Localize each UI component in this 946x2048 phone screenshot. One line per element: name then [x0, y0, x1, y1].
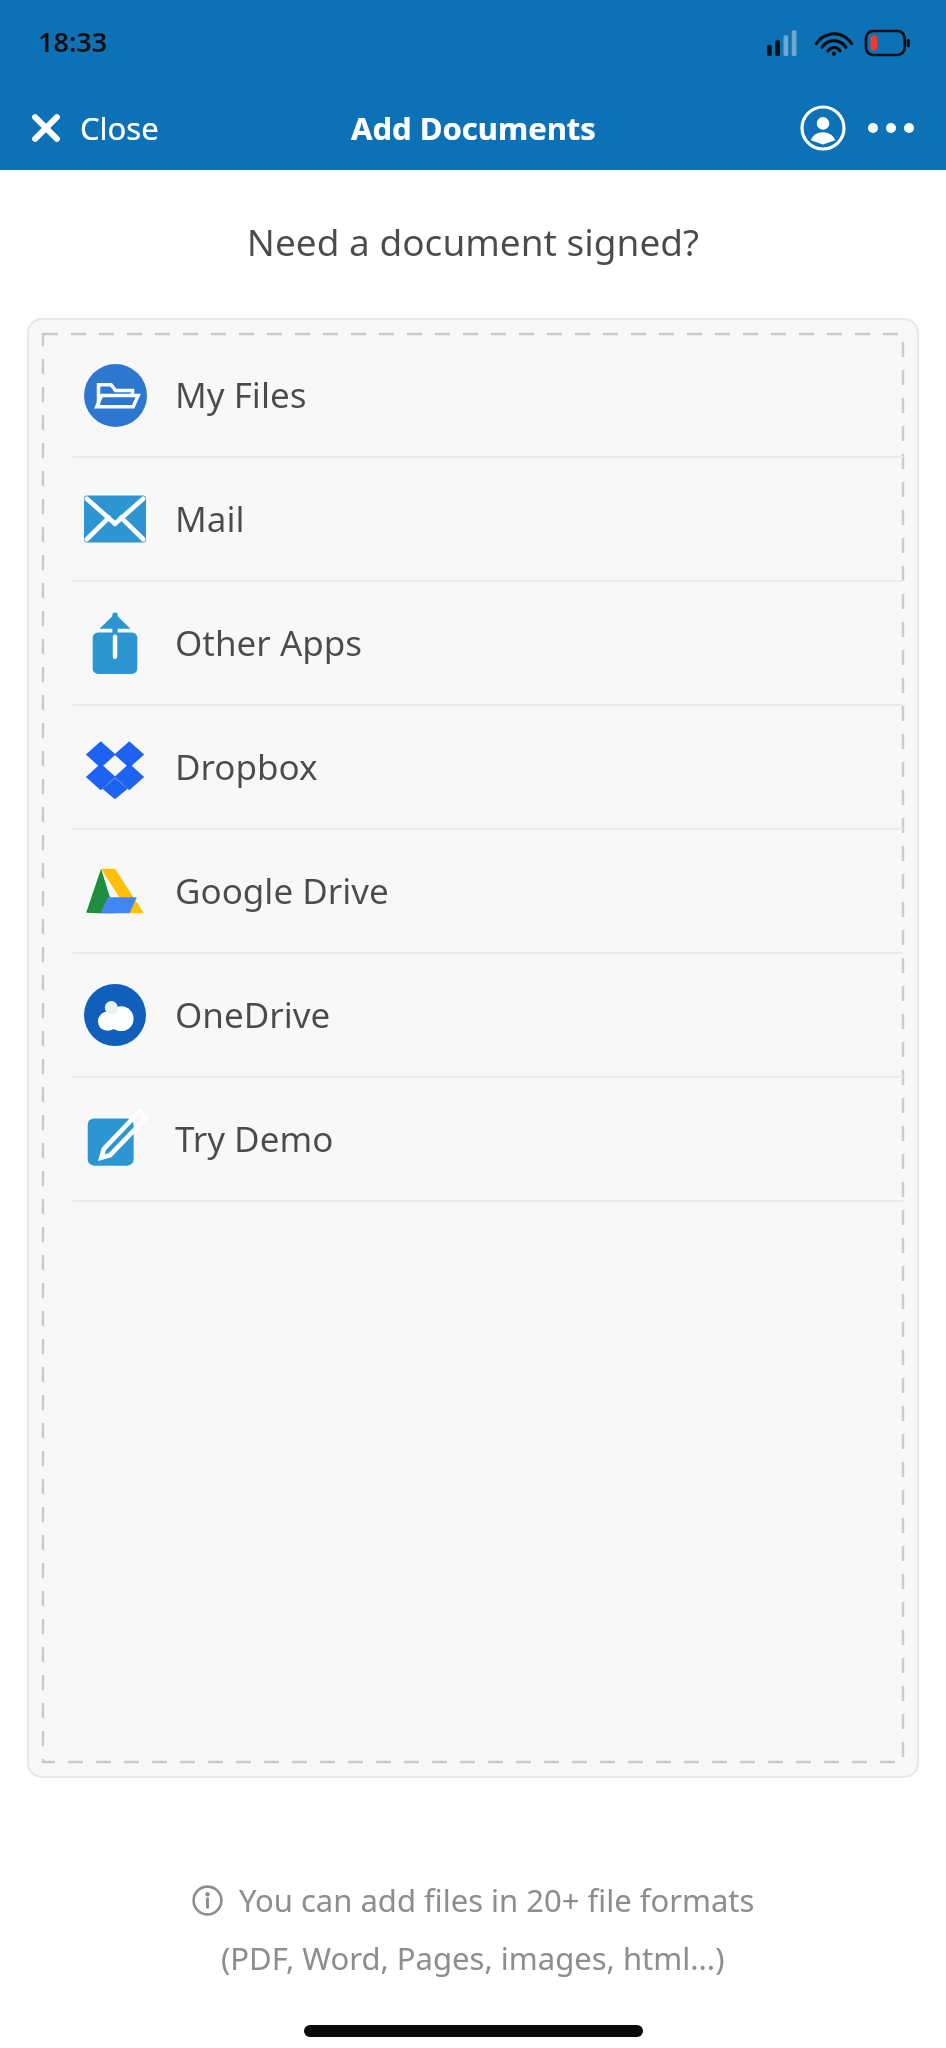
button[interactable]: Other Apps: [27, 582, 919, 704]
button[interactable]: Google Drive: [27, 830, 919, 952]
staticText: Close: [80, 107, 159, 149]
staticText: (PDF, Word, Pages, images, html...): [221, 1937, 725, 1979]
staticText: You can add files in 20+ file formats: [239, 1879, 755, 1921]
staticText: Dropbox: [175, 743, 318, 791]
staticText: Google Drive: [175, 867, 389, 915]
staticText: Try Demo: [175, 1115, 334, 1163]
button[interactable]: More options: [860, 97, 922, 159]
button[interactable]: Mail: [27, 458, 919, 580]
button[interactable]: Dropbox: [27, 706, 919, 828]
button[interactable]: My Files: [27, 334, 919, 456]
staticText: My Files: [175, 371, 307, 419]
staticText: OneDrive: [175, 991, 331, 1039]
staticText: Other Apps: [175, 619, 363, 667]
button[interactable]: Account: [792, 97, 854, 159]
button[interactable]: Try Demo: [27, 1078, 919, 1200]
staticText: Mail: [175, 495, 245, 543]
button[interactable]: Close: [0, 95, 175, 161]
staticText: 18:33: [38, 23, 108, 60]
button[interactable]: OneDrive: [27, 954, 919, 1076]
staticText: Add Documents: [351, 107, 596, 149]
staticText: Need a document signed?: [0, 216, 946, 266]
